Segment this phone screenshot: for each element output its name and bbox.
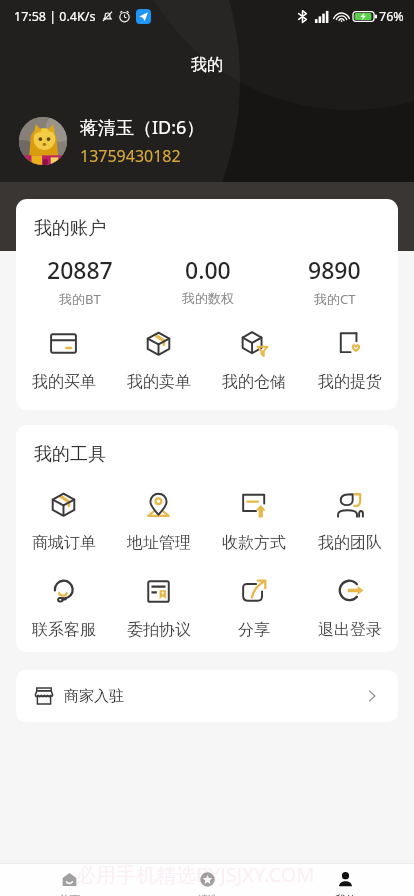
staticText: 商家入驻 [64,687,124,706]
staticText: 20887 [47,254,113,285]
button[interactable]: 退出登录 [302,578,398,640]
button[interactable]: 委拍协议 [111,578,206,640]
staticText: 地址管理 [127,533,191,553]
button[interactable]: Avatar [19,117,67,165]
button[interactable]: 地址管理 [111,491,206,553]
staticText: 分享 [238,620,270,640]
staticText: 我的账户 [34,217,106,240]
button[interactable]: 9890 [271,254,398,308]
staticText: 委拍协议 [127,620,191,640]
staticText: 17:58 | 0.4K/s [14,8,96,25]
staticText: 我的CT [314,290,356,308]
button[interactable]: 首页 [0,864,138,896]
staticText: 联系客服 [32,620,96,640]
button[interactable]: 商城订单 [16,491,111,553]
button[interactable]: 我的仓储 [206,330,302,392]
staticText: 收款方式 [222,533,286,553]
staticText: 我的团队 [318,533,382,553]
staticText: 蒋清玉（ID:6） [80,115,205,140]
staticText: 首页 [59,893,80,896]
staticText: 我的提货 [318,372,382,392]
staticText: 必用手机精选BYJSJXY.COM [76,861,315,888]
button[interactable]: 我的 [276,864,414,896]
button[interactable]: 我的卖单 [111,330,206,392]
staticText: 我的 [335,893,356,896]
button[interactable]: 联系客服 [16,578,111,640]
staticText: 退出登录 [318,620,382,640]
button[interactable]: 精选 [138,864,276,896]
button[interactable]: 我的团队 [302,491,398,553]
staticText: 9890 [308,254,361,285]
staticText: 我的 [191,55,223,75]
button[interactable]: 收款方式 [206,491,302,553]
staticText: 商城订单 [32,533,96,553]
staticText: 76% [379,8,404,25]
button[interactable]: 商家入驻 [16,670,398,722]
staticText: 我的卖单 [127,372,191,392]
staticText: 13759430182 [80,145,181,167]
button[interactable]: 20887 [16,254,144,308]
button[interactable]: 0.00 [144,254,271,306]
staticText: 我的工具 [34,443,106,466]
button[interactable]: 我的提货 [302,330,398,392]
staticText: 精选 [197,893,218,896]
staticText: 0.00 [185,254,231,285]
staticText: 我的BT [59,290,101,308]
button[interactable]: 分享 [206,578,302,640]
staticText: 我的仓储 [222,372,286,392]
staticText: 我的数权 [182,290,234,306]
staticText: 我的买单 [32,372,96,392]
button[interactable]: 我的买单 [16,330,111,392]
